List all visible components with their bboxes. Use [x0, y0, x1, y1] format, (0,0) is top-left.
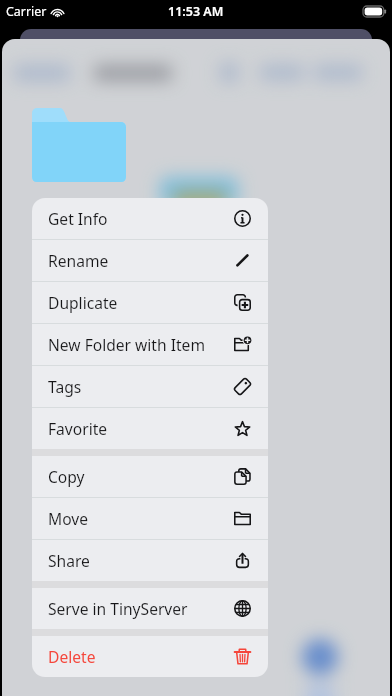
staticText: Favorite: [48, 418, 108, 439]
button[interactable]: Delete: [32, 636, 268, 677]
staticText: Move: [48, 508, 88, 529]
staticText: Delete: [48, 646, 96, 667]
staticText: Carrier: [6, 3, 47, 20]
button[interactable]: Copy: [32, 456, 268, 497]
staticText: Tags: [48, 376, 82, 397]
staticText: 11:53 AM: [168, 3, 224, 20]
button[interactable]: Serve in TinyServer: [32, 588, 268, 629]
staticText: New Folder with Item: [48, 334, 205, 355]
button[interactable]: Duplicate: [32, 282, 268, 323]
button[interactable]: New Folder with Item: [32, 324, 268, 365]
staticText: Rename: [48, 250, 109, 271]
button[interactable]: Move: [32, 498, 268, 539]
staticText: Get Info: [48, 208, 108, 229]
staticText: Duplicate: [48, 292, 118, 313]
staticText: Serve in TinyServer: [48, 598, 188, 619]
button[interactable]: Tags: [32, 366, 268, 407]
staticText: Share: [48, 550, 90, 571]
button[interactable]: Favorite: [32, 408, 268, 449]
button[interactable]: Get Info: [32, 198, 268, 239]
staticText: Copy: [48, 466, 85, 487]
button[interactable]: Rename: [32, 240, 268, 281]
button[interactable]: Share: [32, 540, 268, 581]
